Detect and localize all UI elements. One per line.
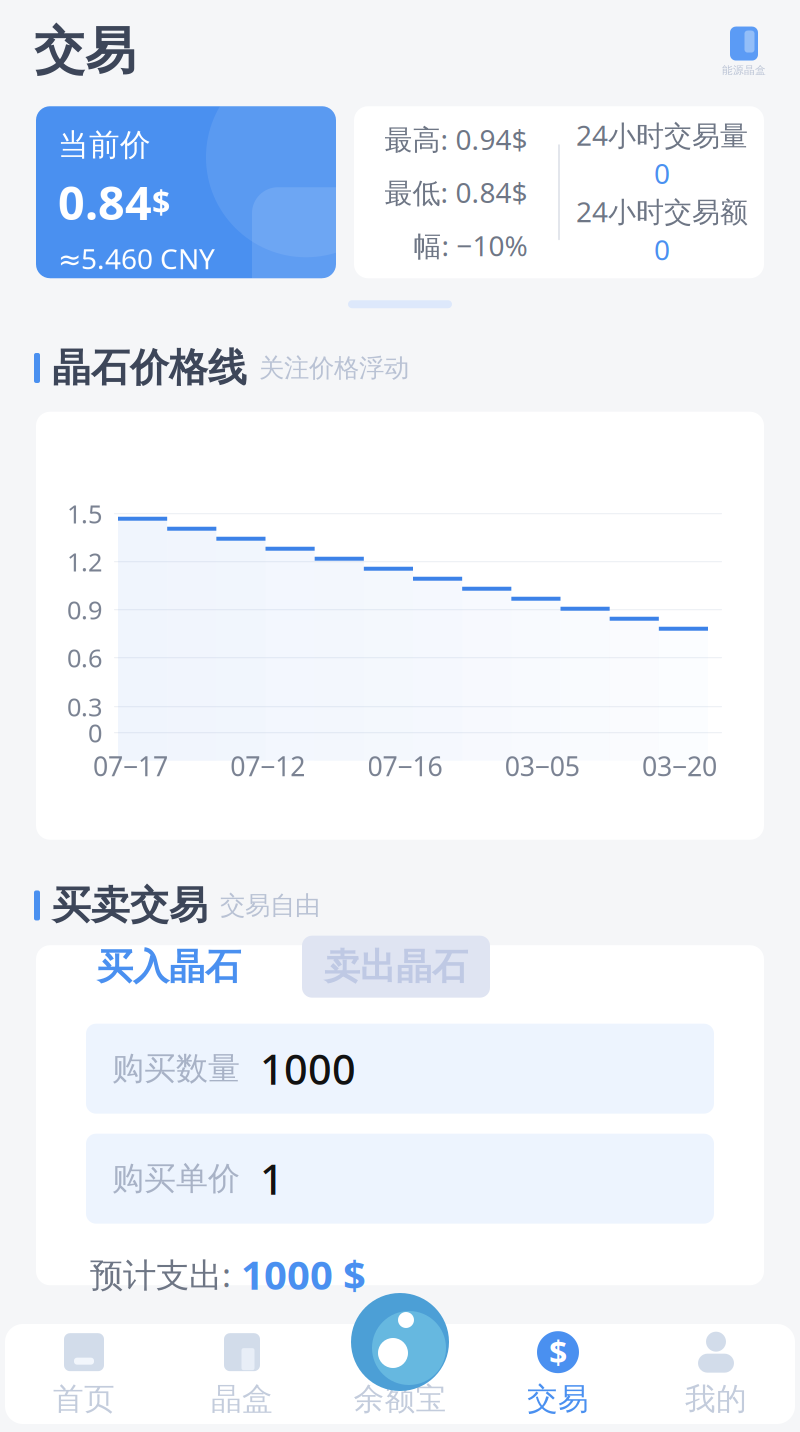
staticText: 买入晶石 (97, 945, 241, 989)
staticText: 1000 (260, 1041, 356, 1096)
staticText: 幅: −10% (413, 227, 527, 264)
staticText: 买卖交易 (52, 882, 208, 929)
staticText: 交易 (527, 1380, 589, 1418)
button[interactable]: 余额宝 (321, 1325, 479, 1423)
staticText: 07−12 (230, 748, 305, 784)
staticText: ≈5.460 CNY (58, 240, 215, 277)
staticText: 预计支出: (90, 1252, 231, 1296)
staticText: $ (549, 1331, 567, 1373)
staticText: 03−05 (505, 748, 580, 784)
staticText: 晶盒 (211, 1380, 273, 1418)
staticText: 07−16 (367, 748, 442, 784)
staticText: 购买单价 (112, 1159, 240, 1198)
staticText: 最低: 0.84$ (384, 174, 527, 211)
staticText: 0.6 (67, 641, 102, 674)
button[interactable]: 能源晶盒 (722, 26, 766, 77)
button[interactable]: 首页 (5, 1325, 163, 1423)
staticText: 首页 (53, 1380, 115, 1418)
staticText: 当前价 (58, 126, 151, 164)
staticText: 最高: 0.94$ (384, 120, 527, 158)
staticText: 1.5 (67, 497, 102, 530)
staticText: 0 (654, 155, 670, 192)
staticText: 交易 (34, 20, 136, 82)
button[interactable]: 我的 (637, 1325, 795, 1423)
staticText: 我的 (685, 1380, 747, 1418)
button[interactable]: 余额宝 (350, 1292, 450, 1392)
button[interactable]: 购买数量 (86, 1024, 714, 1114)
staticText: 1.2 (67, 545, 102, 578)
button[interactable]: 晶盒 (163, 1325, 321, 1423)
button[interactable]: 卖出晶石 (302, 936, 490, 998)
staticText: 余额宝 (353, 1380, 446, 1418)
staticText: 晶石价格线 (52, 344, 247, 392)
staticText: 关注价格浮动 (259, 352, 409, 383)
staticText: 1000 $ (241, 1248, 366, 1301)
staticText: 购买数量 (112, 1049, 240, 1088)
staticText: 0 (88, 716, 102, 749)
staticText: 0.84 (58, 171, 152, 233)
staticText: 0.9 (67, 593, 102, 626)
staticText: 07−17 (93, 748, 168, 784)
staticText: $ (152, 181, 170, 223)
staticText: 1 (260, 1151, 284, 1206)
button[interactable]: 买入晶石 (36, 936, 302, 998)
staticText: 24小时交易额 (576, 193, 748, 230)
button[interactable]: 购买单价 (86, 1134, 714, 1224)
staticText: 24小时交易量 (576, 116, 748, 154)
staticText: 0 (654, 231, 670, 268)
button[interactable]: $ (479, 1325, 637, 1423)
staticText: 0.3 (67, 690, 102, 723)
staticText: 交易自由 (220, 890, 320, 921)
staticText: 03−20 (642, 748, 717, 784)
staticText: 能源晶盒 (722, 64, 766, 77)
staticText: 卖出晶石 (324, 945, 468, 989)
